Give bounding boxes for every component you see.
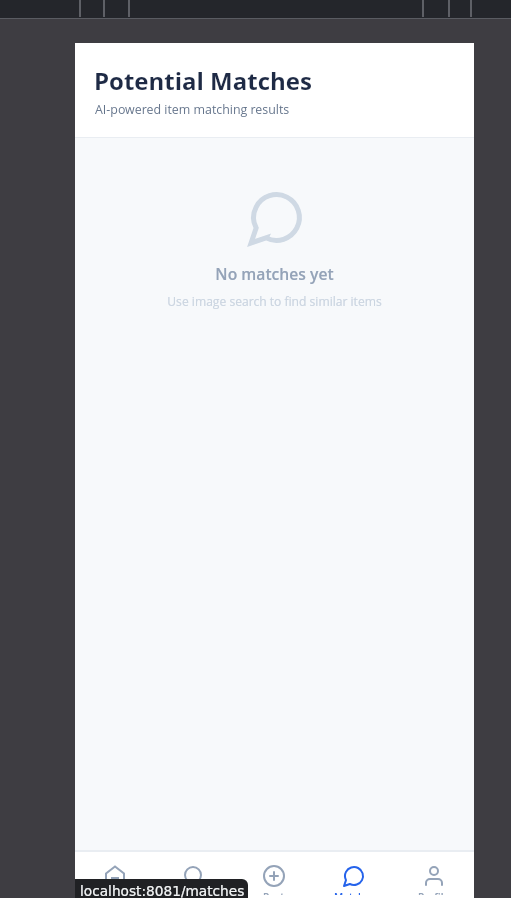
staticText: No matches yet: [75, 263, 474, 284]
staticText: Potential Matches: [94, 64, 312, 97]
staticText: Use image search to find similar items: [75, 293, 474, 309]
staticText: Profile: [418, 890, 450, 898]
staticText: localhost:8081/matches: [80, 883, 245, 898]
button[interactable]: Profile: [394, 852, 474, 898]
button[interactable]: Matches: [314, 852, 394, 898]
button[interactable]: Post: [234, 852, 314, 898]
staticText: Search: [178, 890, 211, 898]
button[interactable]: Browse: [75, 852, 154, 898]
staticText: AI-powered item matching results: [95, 101, 290, 118]
staticText: Post: [263, 890, 285, 898]
staticText: Matches: [334, 890, 375, 898]
button[interactable]: Search: [154, 852, 234, 898]
staticText: Browse: [97, 890, 133, 898]
